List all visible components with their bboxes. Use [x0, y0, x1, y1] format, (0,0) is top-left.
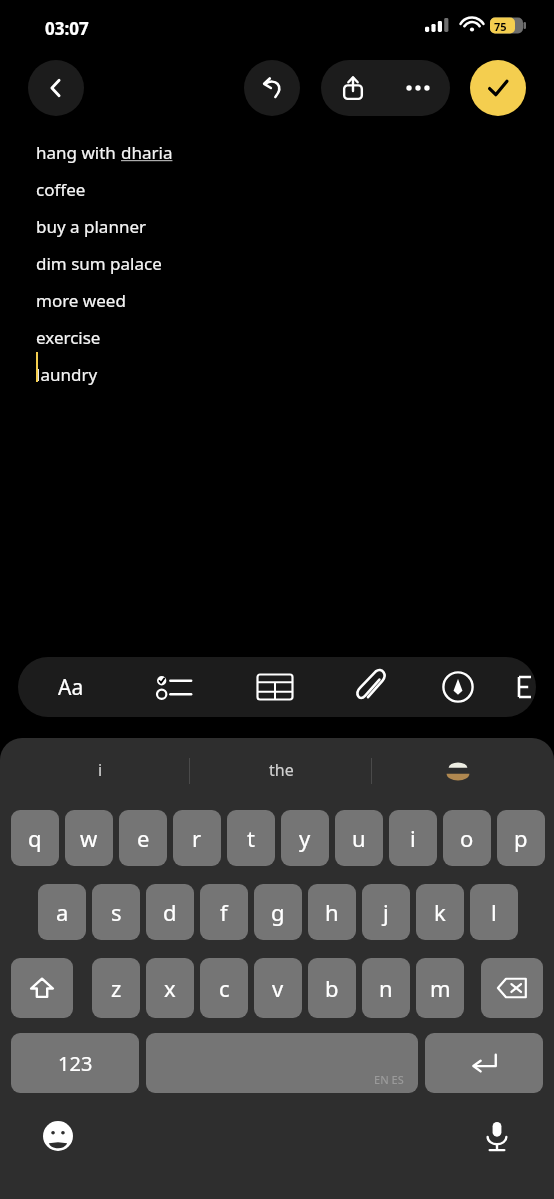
button[interactable]: the: [191, 738, 371, 802]
button[interactable]: f: [200, 884, 248, 940]
button[interactable]: Attach: [332, 657, 410, 717]
button[interactable]: Space: [146, 1033, 418, 1093]
staticText: e: [137, 823, 150, 853]
staticText: o: [460, 823, 474, 853]
staticText: 75: [494, 19, 507, 34]
button[interactable]: Backspace: [481, 958, 543, 1018]
button[interactable]: Draw: [422, 657, 494, 717]
staticText: coffee: [36, 178, 86, 201]
button[interactable]: b: [308, 958, 356, 1018]
staticText: i: [98, 759, 103, 781]
staticText: 03:07: [45, 17, 89, 40]
button[interactable]: Done: [470, 60, 526, 116]
button[interactable]: Share: [321, 60, 385, 116]
button[interactable]: Undo: [244, 60, 300, 116]
button[interactable]: r: [173, 810, 221, 866]
button[interactable]: h: [308, 884, 356, 940]
staticText: laundry: [36, 363, 98, 386]
button[interactable]: d: [146, 884, 194, 940]
button[interactable]: Checklist: [136, 657, 214, 717]
staticText: n: [379, 973, 393, 1003]
button[interactable]: a: [38, 884, 86, 940]
button[interactable]: m: [416, 958, 464, 1018]
button[interactable]: More options: [385, 60, 450, 116]
button[interactable]: z: [92, 958, 140, 1018]
staticText: buy a planner: [36, 215, 147, 238]
staticText: y: [299, 823, 311, 853]
button[interactable]: dharia: [121, 141, 173, 164]
button[interactable]: v: [254, 958, 302, 1018]
button[interactable]: Back: [28, 60, 84, 116]
button[interactable]: i: [10, 738, 190, 802]
button[interactable]: o: [443, 810, 491, 866]
staticText: t: [247, 823, 255, 853]
button[interactable]: 123: [11, 1033, 139, 1093]
button[interactable]: Voice input: [477, 1116, 517, 1156]
button[interactable]: Table: [236, 657, 314, 717]
staticText: g: [271, 897, 285, 927]
button[interactable]: p: [497, 810, 545, 866]
staticText: dim sum palace: [36, 252, 162, 275]
staticText: h: [325, 897, 339, 927]
button[interactable]: c: [200, 958, 248, 1018]
staticText: p: [514, 823, 528, 853]
staticText: EN ES: [374, 1072, 404, 1087]
staticText: 123: [58, 1050, 93, 1077]
button[interactable]: t: [227, 810, 275, 866]
button[interactable]: n: [362, 958, 410, 1018]
button[interactable]: [512, 657, 536, 717]
button[interactable]: x: [146, 958, 194, 1018]
button[interactable]: i: [389, 810, 437, 866]
button[interactable]: Enter: [425, 1033, 543, 1093]
staticText: f: [220, 897, 228, 927]
button[interactable]: s: [92, 884, 140, 940]
staticText: u: [352, 823, 366, 853]
staticText: exercise: [36, 326, 101, 349]
button[interactable]: Shift: [11, 958, 73, 1018]
staticText: l: [491, 897, 497, 927]
staticText: a: [56, 897, 69, 927]
button[interactable]: l: [470, 884, 518, 940]
staticText: r: [192, 823, 202, 853]
staticText: c: [219, 973, 230, 1003]
button[interactable]: Emoji suggestion: [373, 738, 543, 802]
staticText: w: [80, 823, 98, 853]
button[interactable]: g: [254, 884, 302, 940]
staticText: x: [164, 973, 176, 1003]
button[interactable]: e: [119, 810, 167, 866]
staticText: i: [410, 823, 416, 853]
button[interactable]: Aa: [32, 657, 110, 717]
staticText: q: [28, 823, 42, 853]
staticText: d: [163, 897, 177, 927]
button[interactable]: y: [281, 810, 329, 866]
staticText: j: [383, 897, 389, 927]
staticText: hang with: [36, 141, 121, 164]
button[interactable]: u: [335, 810, 383, 866]
button[interactable]: q: [11, 810, 59, 866]
staticText: the: [269, 759, 294, 781]
staticText: z: [111, 973, 122, 1003]
staticText: m: [430, 973, 451, 1003]
staticText: k: [434, 897, 446, 927]
button[interactable]: w: [65, 810, 113, 866]
staticText: s: [111, 897, 122, 927]
button[interactable]: k: [416, 884, 464, 940]
button[interactable]: j: [362, 884, 410, 940]
button[interactable]: Emoji: [38, 1116, 78, 1156]
staticText: Aa: [58, 673, 84, 702]
staticText: more weed: [36, 289, 126, 312]
staticText: b: [325, 973, 339, 1003]
staticText: v: [272, 973, 284, 1003]
